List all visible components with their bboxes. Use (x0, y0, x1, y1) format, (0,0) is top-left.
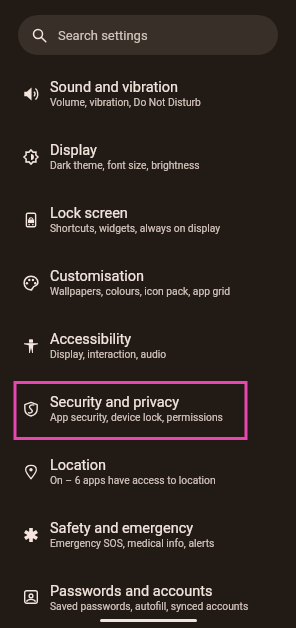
staticText: Emergency SOS, medical info, alerts (50, 537, 215, 549)
staticText: Security and privacy (50, 394, 180, 411)
button[interactable]: Display (0, 125, 296, 188)
staticText: Lock screen (50, 205, 128, 222)
button[interactable]: Safety and emergency (0, 503, 296, 566)
staticText: Dark theme, font size, brightness (50, 159, 200, 171)
button[interactable]: Accessibility (0, 314, 296, 377)
staticText: On – 6 apps have access to location (50, 474, 216, 486)
button[interactable]: Sound and vibration (0, 62, 296, 125)
staticText: App security, device lock, permissions (50, 411, 223, 423)
staticText: Volume, vibration, Do Not Disturb (50, 96, 201, 108)
staticText: Display (50, 142, 97, 159)
staticText: Safety and emergency (50, 520, 194, 537)
button[interactable]: Customisation (0, 251, 296, 314)
staticText: Shortcuts, widgets, always on display (50, 222, 221, 234)
button[interactable]: Lock screen (0, 188, 296, 251)
staticText: Sound and vibration (50, 79, 179, 96)
staticText: Display, interaction, audio (50, 348, 167, 360)
staticText: Accessibility (50, 331, 132, 348)
staticText: Wallpapers, colours, icon pack, app grid (50, 285, 231, 297)
staticText: Location (50, 457, 107, 474)
button[interactable]: Search settings (18, 15, 278, 55)
button[interactable]: Security and privacy (0, 377, 296, 440)
staticText: Customisation (50, 268, 144, 285)
staticText: Saved passwords, autofill, synced accoun… (50, 600, 249, 612)
staticText: Passwords and accounts (50, 583, 213, 600)
button[interactable]: Passwords and accounts (0, 566, 296, 628)
button[interactable]: Location (0, 440, 296, 503)
staticText: Search settings (58, 28, 148, 43)
